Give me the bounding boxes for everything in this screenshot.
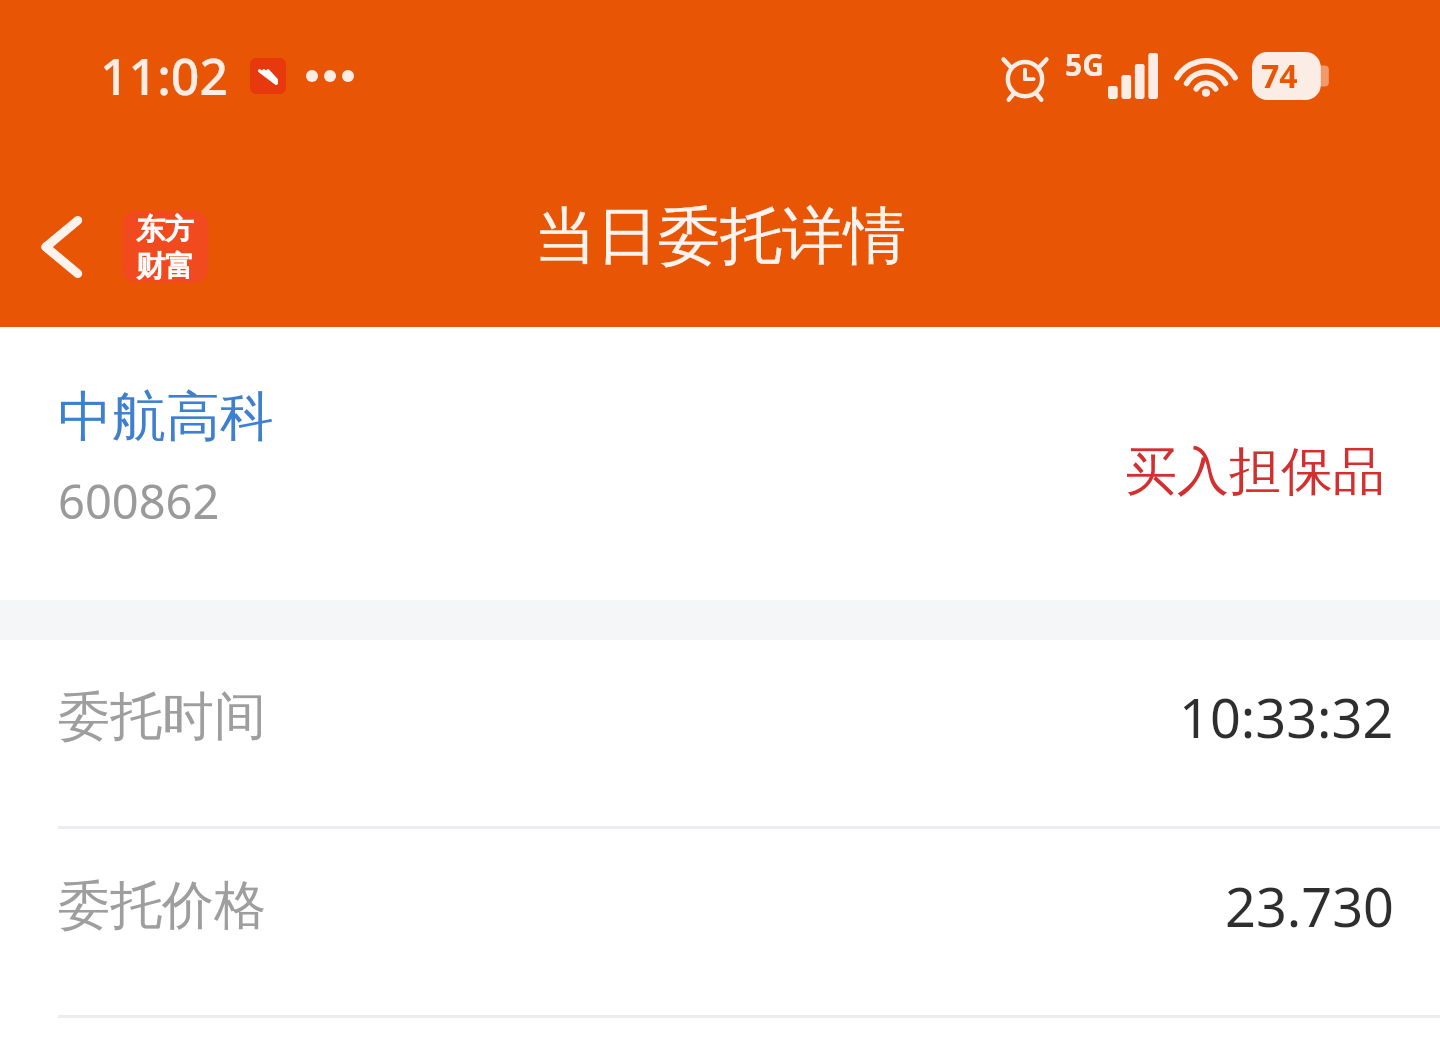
staticText: 600862: [58, 469, 220, 533]
staticText: 5G: [1065, 44, 1104, 85]
button[interactable]: Back: [30, 207, 92, 287]
button[interactable]: 委托价格: [0, 829, 1440, 1015]
button[interactable]: East Money logo: [122, 211, 208, 283]
staticText: 当日委托详情: [534, 197, 906, 275]
staticText: 买入担保品: [1125, 439, 1385, 505]
staticText: 中航高科: [58, 383, 274, 451]
button[interactable]: 中航高科: [0, 327, 1440, 600]
staticText: 东方: [136, 211, 194, 248]
staticText: 11:02: [100, 42, 228, 110]
staticText: 74: [1261, 54, 1298, 98]
staticText: 10:33:32: [1179, 680, 1394, 754]
staticText: 财富: [136, 248, 194, 283]
button[interactable]: 委托时间: [0, 640, 1440, 826]
staticText: 委托时间: [58, 684, 266, 750]
staticText: 委托价格: [58, 873, 266, 939]
staticText: 23.730: [1225, 869, 1394, 943]
